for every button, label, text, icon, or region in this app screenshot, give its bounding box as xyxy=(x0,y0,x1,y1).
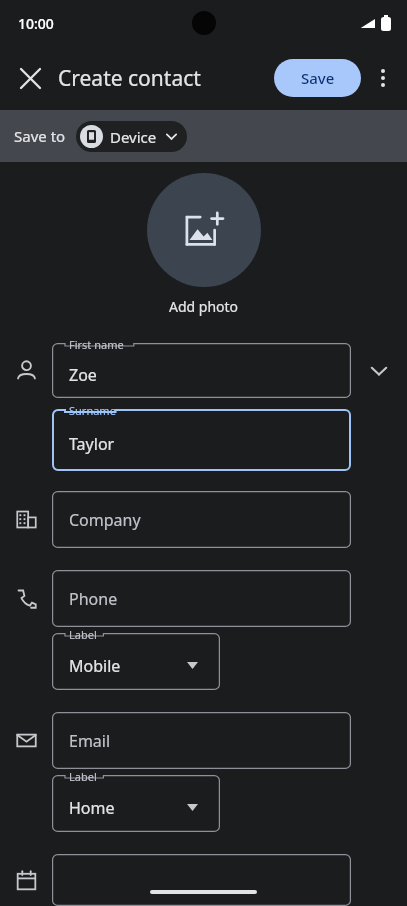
button[interactable]: Add photo xyxy=(147,173,261,287)
button[interactable]: Surname xyxy=(52,409,351,471)
button[interactable]: Close xyxy=(6,54,54,102)
button[interactable]: Company xyxy=(52,491,351,548)
staticText: Label xyxy=(69,769,97,784)
staticText: Mobile xyxy=(69,655,121,677)
staticText: Phone xyxy=(69,588,118,610)
button[interactable]: More options xyxy=(361,56,405,100)
button[interactable]: Phone xyxy=(52,570,351,627)
button[interactable]: Label xyxy=(52,775,220,832)
staticText: First name xyxy=(69,337,124,352)
staticText: Create contact xyxy=(58,64,201,93)
staticText: Taylor xyxy=(69,433,115,455)
button[interactable]: Save xyxy=(274,59,361,97)
button[interactable]: Device xyxy=(76,121,187,152)
staticText: 10:00 xyxy=(18,14,54,33)
button[interactable]: First name xyxy=(52,343,351,398)
button[interactable]: Label xyxy=(52,633,220,690)
staticText: Save xyxy=(301,68,335,88)
button[interactable]: Email xyxy=(52,712,351,769)
staticText: Home xyxy=(69,797,115,819)
staticText: Company xyxy=(69,509,141,531)
staticText: Email xyxy=(69,730,111,752)
staticText: Save to xyxy=(14,126,66,146)
staticText: Zoe xyxy=(69,364,97,386)
staticText: Surname xyxy=(69,403,116,418)
staticText: Device xyxy=(110,127,157,147)
staticText: Label xyxy=(69,627,97,642)
staticText: Add photo xyxy=(169,297,239,316)
button[interactable]: Expand name xyxy=(351,343,407,398)
button[interactable] xyxy=(52,854,351,906)
